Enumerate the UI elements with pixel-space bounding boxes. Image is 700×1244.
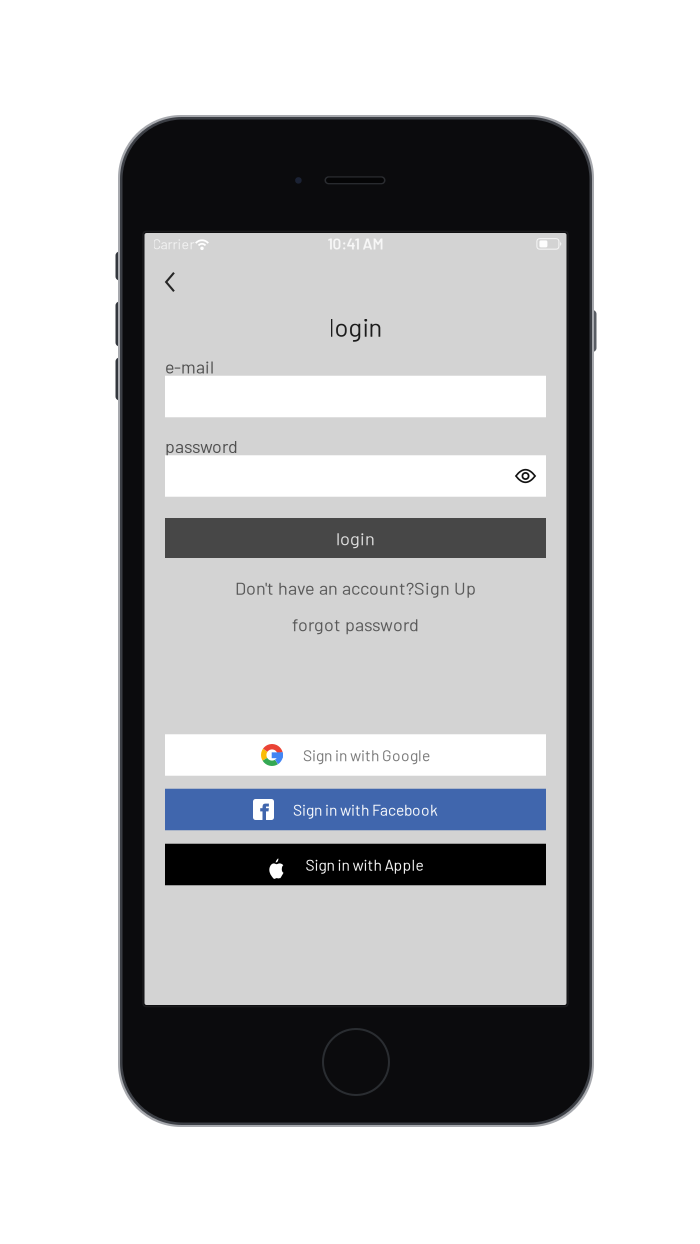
staticText: Sign in with Google — [303, 746, 430, 764]
staticText: forgot password — [292, 613, 419, 635]
staticText: Don't have an account?Sign Up — [235, 577, 476, 598]
button[interactable]: login — [165, 518, 546, 558]
button[interactable]: Don't have an account?Sign Up — [165, 575, 546, 599]
staticText: Sign in with Facebook — [293, 800, 438, 819]
button[interactable]: forgot password — [165, 612, 546, 636]
staticText: Sign in with Apple — [305, 855, 423, 874]
staticText: login — [336, 527, 375, 549]
button[interactable]: Back — [150, 257, 189, 306]
button[interactable]: Sign in with Facebook — [165, 789, 546, 830]
button[interactable]: Show password — [507, 460, 544, 492]
staticText: Carrier — [153, 235, 195, 252]
staticText: e-mail — [165, 356, 214, 377]
staticText: 10:41 AM — [327, 234, 383, 253]
staticText: login — [328, 311, 382, 342]
staticText: password — [165, 435, 238, 457]
button[interactable]: Sign in with Google — [165, 734, 546, 776]
button[interactable]: Sign in with Apple — [165, 844, 546, 885]
